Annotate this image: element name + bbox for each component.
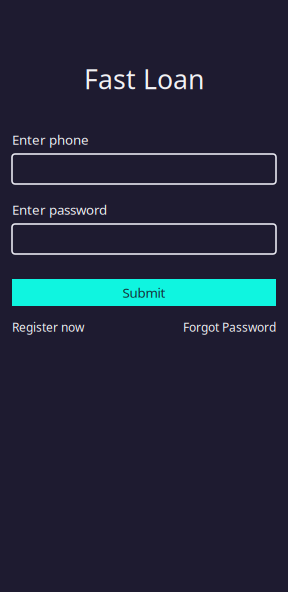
button[interactable]: Register now [12, 319, 84, 335]
staticText: Forgot Password [183, 319, 276, 335]
button[interactable]: Forgot Password [183, 319, 276, 335]
button[interactable]: Enter phone [12, 154, 276, 184]
button[interactable]: Enter password [12, 224, 276, 254]
staticText: Submit [122, 284, 165, 301]
staticText: Enter phone [12, 131, 89, 148]
staticText: Fast Loan [84, 61, 204, 97]
staticText: Enter password [12, 201, 107, 218]
staticText: Register now [12, 319, 84, 335]
button[interactable]: Submit [12, 279, 276, 306]
